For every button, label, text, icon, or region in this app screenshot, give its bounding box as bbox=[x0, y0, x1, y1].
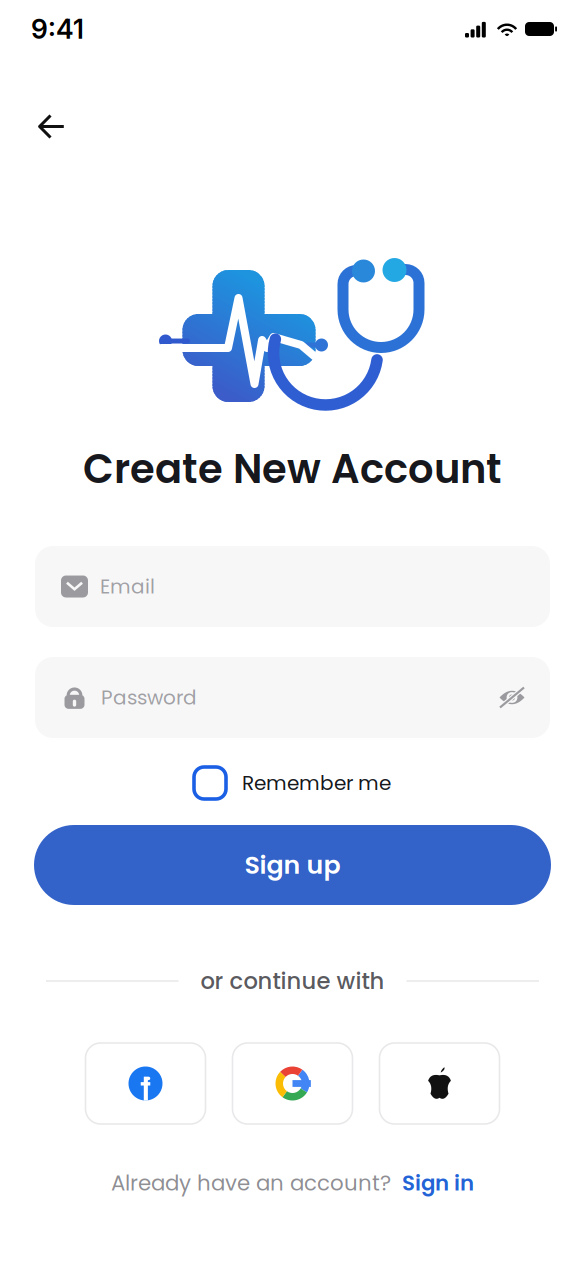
staticText: Create New Account bbox=[83, 441, 502, 497]
staticText: Email bbox=[100, 572, 155, 600]
button[interactable]: Continue with Apple bbox=[379, 1043, 499, 1124]
staticText: or continue with bbox=[200, 965, 384, 997]
staticText: Sign up bbox=[244, 847, 340, 883]
button[interactable]: Sign in bbox=[391, 1164, 474, 1202]
button[interactable]: Remember me bbox=[186, 761, 399, 805]
button[interactable]: Continue with Google bbox=[232, 1043, 352, 1124]
button[interactable]: Show password bbox=[490, 678, 534, 716]
button[interactable]: Continue with Facebook bbox=[85, 1043, 205, 1124]
staticText: Remember me bbox=[242, 769, 391, 797]
staticText: Password bbox=[101, 683, 197, 711]
button[interactable]: Sign up bbox=[34, 825, 551, 905]
button[interactable]: Back bbox=[24, 101, 79, 152]
staticText: Sign in bbox=[402, 1168, 474, 1198]
staticText: 9:41 bbox=[31, 13, 84, 45]
staticText: Already have an account? bbox=[111, 1168, 391, 1198]
